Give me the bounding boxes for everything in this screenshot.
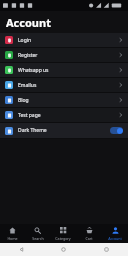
button[interactable]: Search [25,224,50,243]
button[interactable]: Home [42,243,85,256]
staticText: Account [108,236,122,241]
button[interactable]: Register [0,48,128,62]
staticText: Whatsapp us [18,67,119,74]
staticText: Category [55,236,71,241]
staticText: Emailus [18,82,119,89]
staticText: Home [7,236,18,241]
staticText: Account [6,15,51,30]
button[interactable]: Test page [0,108,128,122]
staticText: Blog [18,97,119,104]
button[interactable]: Recents [85,243,128,256]
button[interactable]: Blog [0,93,128,107]
button[interactable]: Cart [76,224,102,243]
button[interactable]: Dark Theme [0,123,128,138]
staticText: Login [18,37,119,44]
staticText: Search [32,236,44,241]
staticText: Cart [85,236,93,241]
button[interactable]: Dark Theme toggle [110,127,123,134]
staticText: Test page [18,112,119,119]
button[interactable]: Category [50,224,76,243]
staticText: Register [18,52,119,59]
button[interactable]: Whatsapp us [0,63,128,77]
button[interactable]: Login [0,33,128,47]
button[interactable]: Account [102,224,128,243]
button[interactable]: Back [0,243,42,256]
staticText: Dark Theme [18,127,110,134]
button[interactable]: Home [0,224,25,243]
button[interactable]: Emailus [0,78,128,92]
